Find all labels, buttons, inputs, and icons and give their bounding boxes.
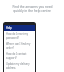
button[interactable]: Help [4,25,35,31]
button[interactable]: Update my delivery address [4,61,35,71]
staticText: Find the answers you need [12,5,53,9]
button[interactable]: Where can I find my order? [4,41,35,51]
button[interactable]: How do I reset my password? [4,31,35,41]
staticText: How do I contact support? [6,52,33,60]
staticText: Help [6,26,12,30]
staticText: How do I reset my password? [6,32,33,40]
button[interactable]: How do I contact support? [4,51,35,61]
staticText: Where can I find my order? [6,42,33,50]
staticText: Update my delivery address [6,62,33,70]
staticText: quickly in the help centre [13,9,51,13]
